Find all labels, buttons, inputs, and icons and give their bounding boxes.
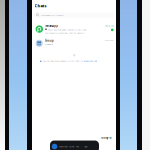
staticText: Yesterday bbox=[105, 39, 114, 42]
staticText: Chats and messages shared in this conv bbox=[47, 28, 86, 31]
staticText: You can add more people to this chat in bbox=[42, 60, 82, 62]
staticText: Installed bbox=[105, 24, 114, 27]
staticText: Waiting 10:48 AM · Aug bbox=[59, 145, 87, 148]
staticText: Group settings bbox=[83, 60, 97, 62]
staticText: are saved to WhatsApp. Tap for details. bbox=[45, 32, 85, 34]
staticText: Group bbox=[45, 39, 54, 42]
staticText: Add people or a Search bbox=[40, 13, 63, 17]
button[interactable]: Add people or a Search bbox=[34, 12, 114, 17]
button[interactable]: WhatsApp bbox=[36, 24, 114, 34]
staticText: Chats bbox=[34, 3, 46, 8]
button[interactable]: Recording status bbox=[50, 140, 99, 150]
staticText: 2 people bbox=[45, 43, 53, 46]
button[interactable]: Group bbox=[36, 39, 114, 46]
staticText: WhatsApp bbox=[45, 24, 58, 28]
staticText: Today 10 bbox=[101, 136, 111, 139]
